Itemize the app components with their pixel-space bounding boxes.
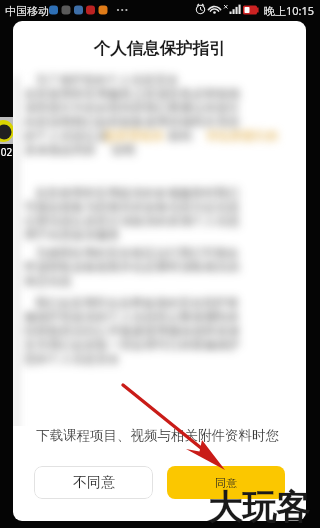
staticText: 用于向您提供服务 [24, 227, 120, 242]
button[interactable]: 同意 [167, 466, 285, 499]
staticText: 中国移动 [5, 4, 49, 18]
staticText: 的个人信息以及 [24, 128, 108, 143]
staticText: 您所享有的 [104, 128, 164, 143]
staticText: 您的个人信息安全 [24, 351, 120, 366]
button[interactable]: 不同意 [34, 466, 153, 499]
staticText: 为保障应用的安全稳定运行我们可能会 [35, 245, 239, 260]
staticText: 02 [0, 145, 13, 159]
staticText: 说明 [111, 142, 135, 157]
staticText: 在您使用本应用提供的各项服务时我们 [35, 185, 239, 200]
staticText: 下载课程项目、视频与相关附件资料时您 [36, 427, 279, 444]
staticText: 向您说明我们如何收集使用存储和共享您 [24, 114, 240, 129]
staticText: 可能会收集与您相关的设备信息日志信息 [24, 199, 240, 214]
staticText: 申请获取设备权限并在必要时读取相关的 [24, 259, 240, 274]
staticText: 经授权的访问公开披露使用修改损坏或者 [24, 323, 240, 338]
staticText: 权利 [168, 128, 192, 143]
staticText: 为了保护您的个人信息安全 [35, 72, 179, 87]
staticText: 个人信息保护指引 [13, 38, 306, 59]
staticText: 同意 [215, 476, 237, 490]
staticText: 具体条款内容 [24, 142, 96, 157]
staticText: 在您使用本应用服务之前请您务必审慎阅 [24, 86, 240, 101]
staticText: 位置信息以及您主动提供的其他个人信息 [24, 213, 240, 228]
staticText: 读本指引中的全部内容我们将通过本指引 [24, 100, 240, 115]
staticText: 详见本指引的 [206, 128, 278, 143]
staticText: 丢失我们会采取一切合理可行的措施保护 [24, 337, 240, 352]
staticText: 不同意 [73, 474, 115, 492]
staticText: 我们会采用符合业界标准的安全防护措 [35, 295, 239, 310]
staticText: 大玩客 [208, 486, 310, 528]
staticText: 状态信息 [24, 273, 72, 288]
staticText: 施保护您提供的个人信息防止数据遭到未 [24, 309, 240, 324]
staticText: 晚上10:15 [264, 3, 315, 18]
